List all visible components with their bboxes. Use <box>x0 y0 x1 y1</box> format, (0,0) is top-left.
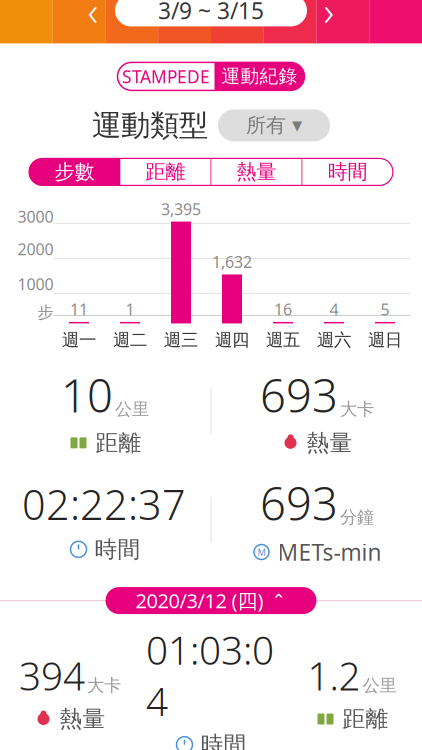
staticText: 週六 <box>317 329 351 351</box>
staticText: 3000 <box>17 206 53 227</box>
staticText: 週日 <box>368 329 402 351</box>
staticText: 693 <box>260 365 338 425</box>
staticText: 01:03:04 <box>146 624 274 727</box>
staticText: 大卡 <box>87 675 121 696</box>
staticText: 時間 <box>327 160 367 184</box>
staticText: 距離 <box>145 160 185 184</box>
staticText: 週五 <box>266 329 300 351</box>
staticText: 大卡 <box>340 399 374 420</box>
button[interactable]: 時間 <box>302 158 393 185</box>
staticText: 1000 <box>17 273 53 294</box>
button[interactable]: Previous week <box>71 0 115 30</box>
staticText: 394 <box>19 650 85 701</box>
staticText: 週一 <box>62 329 96 351</box>
staticText: 2000 <box>17 238 53 259</box>
staticText: 距離 <box>95 429 141 457</box>
staticText: 週四 <box>215 329 249 351</box>
staticText: 熱量 <box>306 429 352 457</box>
button[interactable]: 2020/3/12 (四) <box>105 587 316 614</box>
staticText: › <box>323 0 334 37</box>
button[interactable]: 步數 <box>29 158 120 185</box>
staticText: 週二 <box>113 329 147 351</box>
staticText: 運動紀錄 <box>221 65 297 88</box>
button[interactable]: Next week <box>307 0 351 30</box>
staticText: 距離 <box>342 705 388 733</box>
button[interactable]: 距離 <box>120 158 211 185</box>
staticText: 時間 <box>94 535 140 563</box>
staticText: 公里 <box>115 399 149 420</box>
staticText: 4 <box>329 299 338 320</box>
staticText: 所有 <box>246 113 286 138</box>
staticText: 693 <box>260 473 338 533</box>
button[interactable]: 所有 <box>218 109 330 141</box>
staticText: 3/9 ~ 3/15 <box>158 0 264 25</box>
staticText: 步數 <box>54 160 94 184</box>
button[interactable]: 熱量 <box>211 158 302 185</box>
staticText: 熱量 <box>59 705 105 733</box>
staticText: 5 <box>380 299 389 320</box>
staticText: 公里 <box>362 675 396 696</box>
staticText: 熱量 <box>236 160 276 184</box>
button[interactable]: 運動紀錄 <box>214 62 304 90</box>
staticText: 16 <box>274 299 292 320</box>
staticText: 11 <box>70 299 88 320</box>
staticText: ▼ <box>292 118 302 133</box>
staticText: 1 <box>125 299 134 320</box>
button[interactable]: 3/9 ~ 3/15 <box>115 0 307 26</box>
staticText: 10 <box>61 365 113 425</box>
staticText: 02:22:37 <box>22 476 186 531</box>
staticText: M <box>257 546 265 558</box>
staticText: ⌃ <box>271 591 286 610</box>
staticText: 1.2 <box>307 650 360 701</box>
button[interactable]: STAMPEDE <box>117 62 214 90</box>
staticText: 2020/3/12 (四) <box>135 587 263 614</box>
staticText: 3,395 <box>161 198 201 219</box>
staticText: METs-min <box>277 537 381 567</box>
staticText: 時間 <box>200 731 246 750</box>
staticText: 運動類型 <box>92 107 208 143</box>
staticText: 週三 <box>164 329 198 351</box>
staticText: STAMPEDE <box>122 65 210 88</box>
staticText: ‹ <box>87 0 98 37</box>
staticText: 步 <box>37 303 53 322</box>
staticText: 1,632 <box>212 251 252 272</box>
staticText: 分鐘 <box>340 507 374 528</box>
